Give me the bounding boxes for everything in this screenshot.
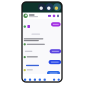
button[interactable]: Attach bbox=[53, 79, 55, 81]
button[interactable]: Tool bbox=[34, 79, 36, 81]
button[interactable]: Tool bbox=[39, 79, 41, 81]
button[interactable]: Send bbox=[58, 79, 60, 81]
button[interactable] bbox=[23, 14, 38, 18]
button[interactable]: Tool bbox=[44, 79, 46, 81]
button[interactable]: Tool bbox=[29, 79, 31, 81]
button[interactable]: Tool bbox=[24, 79, 26, 81]
button[interactable]: Video call bbox=[48, 15, 51, 17]
